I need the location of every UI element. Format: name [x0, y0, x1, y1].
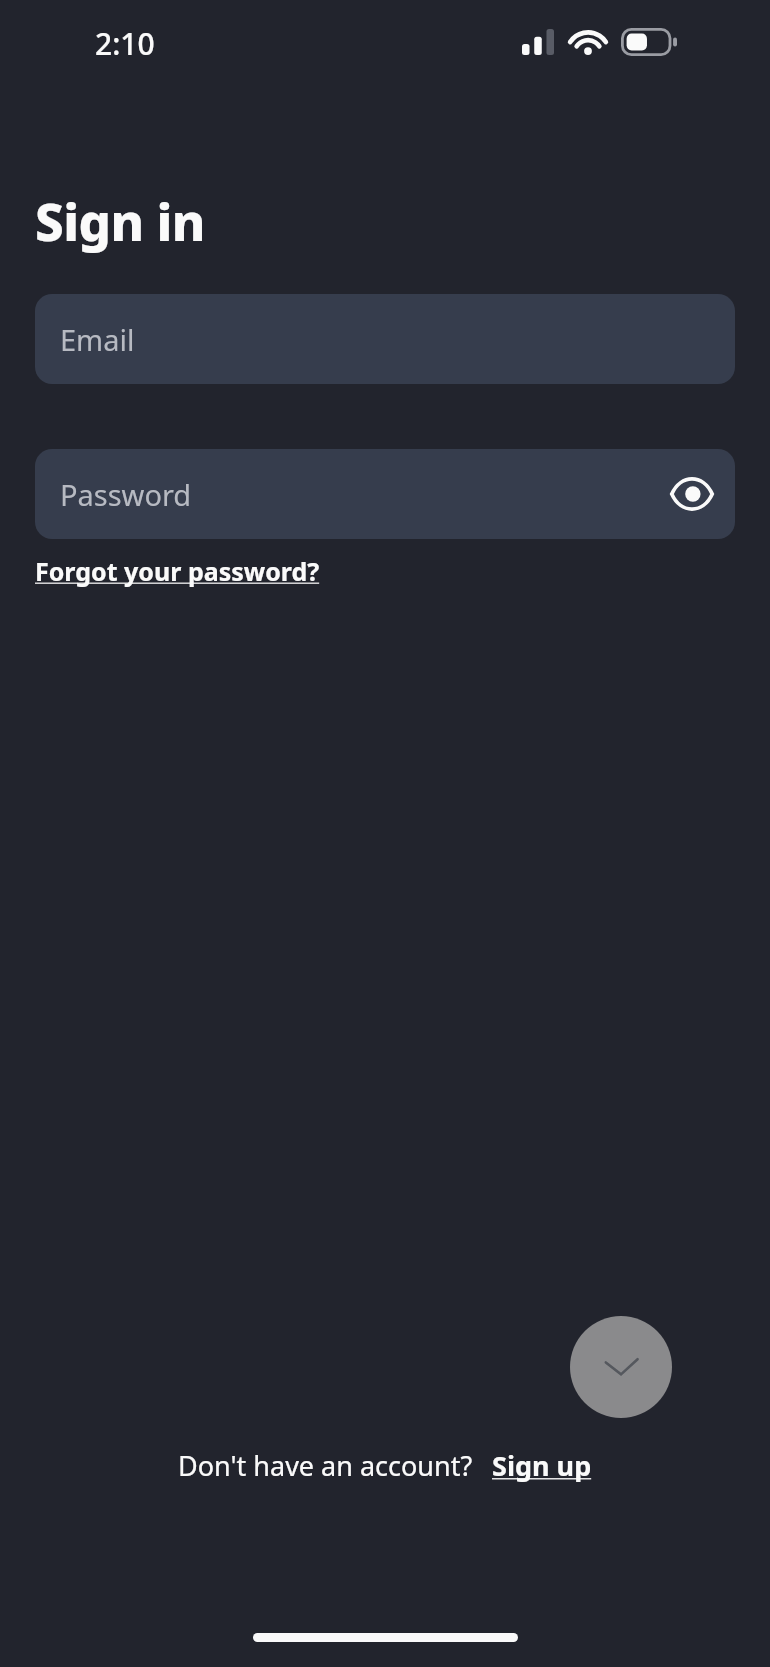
staticText: Password	[60, 475, 192, 514]
button[interactable]: Email	[35, 294, 735, 384]
button[interactable]: Continue	[570, 1316, 672, 1418]
button[interactable]: Forgot your password?	[35, 554, 320, 588]
staticText: Forgot your password?	[35, 554, 320, 588]
staticText: 2:10	[95, 23, 155, 64]
staticText: Don't have an account?	[178, 1447, 473, 1484]
button[interactable]: Sign up	[492, 1447, 592, 1484]
button[interactable]: Password	[35, 449, 735, 539]
staticText: Sign up	[492, 1447, 592, 1484]
button[interactable]: Show password	[663, 465, 721, 523]
staticText: Sign in	[35, 186, 205, 255]
staticText: Email	[60, 320, 135, 359]
